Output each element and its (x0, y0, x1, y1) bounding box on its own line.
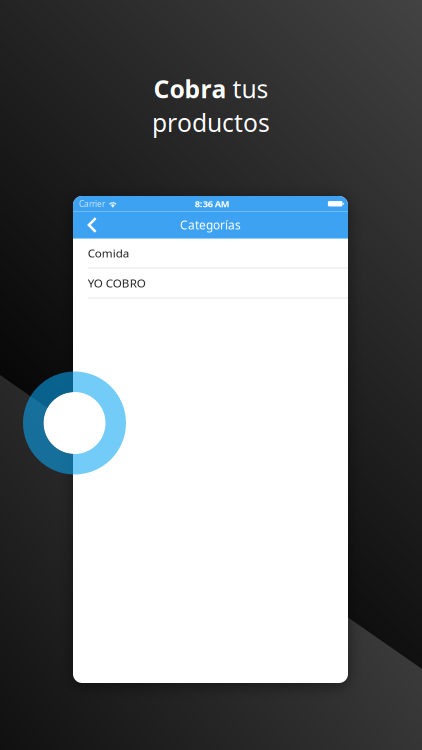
staticText: Categorías (180, 217, 241, 233)
staticText: productos (152, 106, 270, 139)
button[interactable]: YO COBRO (73, 268, 348, 297)
staticText: 8:36 AM (195, 197, 230, 210)
button[interactable]: Comida (73, 238, 348, 267)
staticText: YO COBRO (88, 275, 146, 291)
button[interactable]: Back (73, 212, 109, 238)
staticText: Cobra (153, 72, 226, 106)
staticText: Comida (88, 245, 130, 261)
staticText: Carrier (79, 198, 105, 209)
staticText: tus (226, 72, 268, 106)
